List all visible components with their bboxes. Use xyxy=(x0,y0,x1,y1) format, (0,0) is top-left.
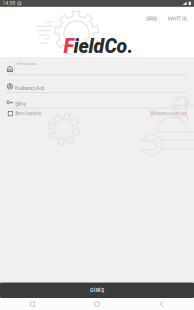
button[interactable]: KAYIT OL xyxy=(166,14,190,24)
button[interactable]: GİRİŞ xyxy=(144,14,159,24)
staticText: Firma kodu xyxy=(16,61,35,66)
staticText: Şifremi unuttum xyxy=(150,111,187,116)
staticText: 14:58 xyxy=(2,1,15,6)
staticText: KAYIT OL xyxy=(168,16,188,22)
button[interactable]: GİRİŞ xyxy=(0,282,194,298)
staticText: F xyxy=(63,35,73,58)
button[interactable]: Back xyxy=(129,301,194,307)
button[interactable]: Home xyxy=(65,301,129,307)
button[interactable]: Beni hatırla xyxy=(8,109,41,118)
staticText: GİRİŞ xyxy=(90,287,104,293)
button[interactable]: Şifremi unuttum xyxy=(150,109,187,118)
staticText: Kullanıcı Adı xyxy=(15,85,44,91)
staticText: Beni hatırla xyxy=(15,111,41,116)
button[interactable]: Recents xyxy=(0,301,65,307)
staticText: GİRİŞ xyxy=(146,16,157,22)
staticText: Şifre xyxy=(15,100,26,107)
staticText: ieldCo. xyxy=(73,35,133,58)
